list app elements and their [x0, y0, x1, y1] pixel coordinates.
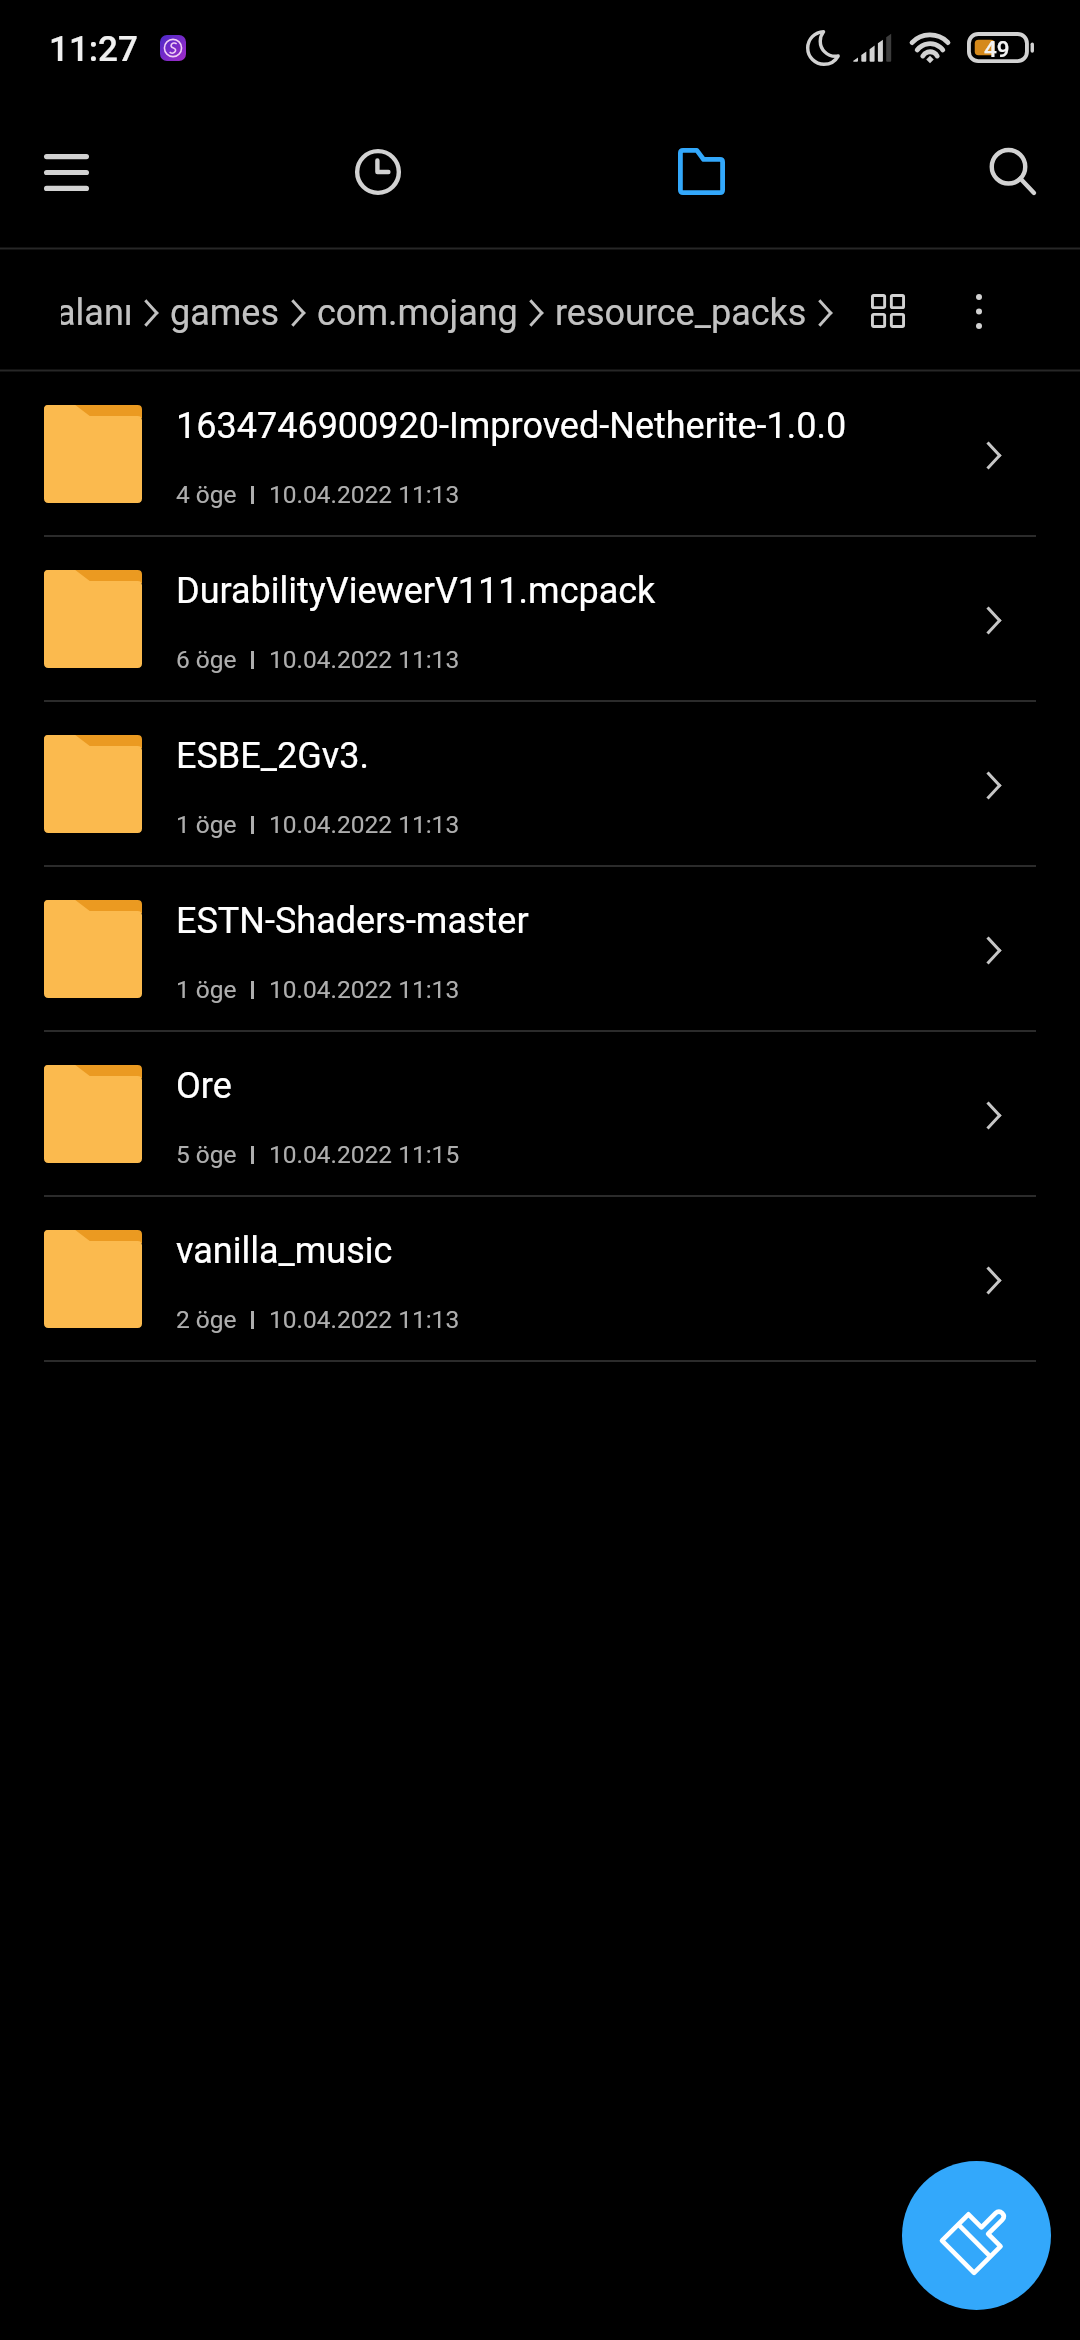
button[interactable]: alanı	[61, 283, 133, 341]
button[interactable]: ESTN-Shaders-master	[0, 867, 1080, 1032]
button[interactable]: resource_packs	[555, 283, 807, 341]
staticText: 6 öge	[176, 645, 237, 674]
button[interactable]: vanilla_music	[0, 1197, 1080, 1362]
staticText: 10.04.2022 11:13	[269, 480, 460, 509]
staticText: 10.04.2022 11:13	[269, 1305, 460, 1334]
button[interactable]: com.mojang	[317, 283, 518, 341]
staticText: vanilla_music	[176, 1230, 393, 1272]
staticText: games	[170, 292, 280, 334]
button[interactable]: Recent	[312, 95, 444, 248]
button[interactable]: Grid view	[848, 271, 928, 351]
button[interactable]: Menu	[0, 95, 132, 248]
staticText: ESBE_2Gv3.	[176, 735, 369, 777]
staticText: 10.04.2022 11:13	[269, 810, 460, 839]
staticText: 2 öge	[176, 1305, 237, 1334]
staticText: resource_packs	[555, 292, 807, 334]
staticText: 10.04.2022 11:15	[269, 1140, 460, 1169]
staticText: 10.04.2022 11:13	[269, 975, 460, 1004]
staticText: 1 öge	[176, 810, 237, 839]
staticText: 1634746900920-Improved-Netherite-1.0.0	[176, 405, 847, 447]
staticText: DurabilityViewerV111.mcpack	[176, 570, 656, 612]
button[interactable]: More options	[939, 271, 1019, 351]
staticText: com.mojang	[317, 292, 518, 334]
staticText: 11:27	[49, 29, 138, 70]
button[interactable]: Ore	[0, 1032, 1080, 1197]
button[interactable]: DurabilityViewerV111.mcpack	[0, 537, 1080, 702]
staticText: 5 öge	[176, 1140, 237, 1169]
staticText: 10.04.2022 11:13	[269, 645, 460, 674]
staticText: alanı	[61, 292, 133, 334]
staticText: 1 öge	[176, 975, 237, 1004]
button[interactable]: Clean	[902, 2161, 1051, 2310]
button[interactable]: Search	[945, 95, 1077, 248]
button[interactable]: Files	[635, 95, 767, 248]
button[interactable]: ESBE_2Gv3.	[0, 702, 1080, 867]
staticText: 4 öge	[176, 480, 237, 509]
button[interactable]: 1634746900920-Improved-Netherite-1.0.0	[0, 372, 1080, 537]
staticText: ESTN-Shaders-master	[176, 900, 529, 942]
staticText: Ore	[176, 1065, 232, 1107]
staticText: 49	[984, 36, 1010, 62]
button[interactable]: games	[170, 283, 280, 341]
